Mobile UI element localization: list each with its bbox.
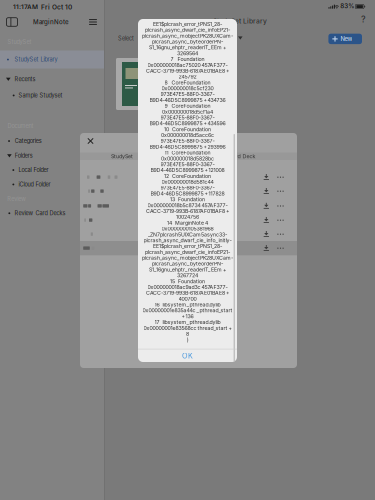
staticText: 8 CoreFoundation [164, 79, 210, 86]
staticText: B9D4-46D5C8999875 + 293996 [149, 144, 225, 150]
staticText: OK [182, 352, 193, 360]
staticText: 973E47E5-88F0-3367- [160, 161, 214, 167]
staticText: plcrash_async_byteorderPN- [152, 261, 223, 267]
staticText: StudySet Library [213, 17, 267, 25]
staticText: MarginNote [33, 18, 69, 26]
staticText: plcrash_async_dwarf_cie_infoEP21- [145, 27, 230, 33]
button[interactable]: Review Card Decks [0, 204, 104, 222]
button[interactable] [80, 184, 297, 198]
staticText: + 136 [181, 313, 193, 319]
staticText: 973E47E5-88F0-3367- [160, 138, 214, 144]
staticText: Local Folder [18, 167, 48, 173]
staticText: Review Card Decks [15, 210, 66, 217]
staticText: 10 CoreFoundation [164, 126, 211, 132]
staticText: 0x000000018d5828bc [161, 155, 214, 162]
staticText: 10024756 [176, 214, 199, 220]
staticText: 11:17AM [13, 3, 38, 11]
button[interactable]: Help [356, 12, 370, 26]
staticText: ? [361, 14, 366, 25]
button[interactable] [80, 170, 297, 184]
staticText: plcrash_async_dwarf_cie_infoEP21- [145, 249, 230, 255]
staticText: 973E47E5-88F0-3367- [160, 91, 214, 97]
staticText: 0x000000018ac75020 457AF377- [147, 62, 227, 68]
staticText: 12 CoreFoundation [164, 173, 211, 179]
staticText: B9D4-46D5C8999875 + 121008 [150, 167, 224, 173]
staticText: StudySet [111, 153, 133, 159]
staticText: S1_16gnu_ehptr_readerIT_EEm + [149, 266, 226, 273]
staticText: plcrash_async_mobjectPK28UXCam- [142, 33, 233, 39]
staticText: CACC-3719-993B-6187AE01BAE8 + [146, 290, 229, 296]
staticText: StudySet [7, 39, 31, 45]
staticText: Fri Oct 10 [41, 3, 72, 11]
staticText: 973E47E5-88F0-3367- [160, 185, 214, 191]
button[interactable]: Local Folder [0, 161, 104, 179]
button[interactable]: Toggle Sidebar [2, 14, 22, 30]
staticText: 0x000000018d581c44 [161, 179, 213, 185]
button[interactable]: StudySet [100, 152, 144, 160]
staticText: plcrash_async_dwarf_cie_info_initIy- [143, 237, 231, 243]
button[interactable]: Recents [0, 70, 104, 88]
staticText: Select [118, 35, 134, 42]
staticText: Categories [15, 138, 42, 144]
staticText: Recents [14, 76, 35, 83]
staticText: 15 Foundation [170, 278, 205, 284]
button[interactable] [80, 199, 297, 213]
staticText: New [340, 35, 352, 42]
staticText: 0x0000000105381968 [161, 225, 213, 232]
button[interactable]: iCloud Folder [0, 175, 104, 193]
button[interactable]: Card Deck [220, 152, 264, 160]
staticText: EE1$plcrash_error_tPNS1_28- [153, 21, 222, 27]
staticText: Review [7, 196, 26, 202]
staticText: 13 Foundation [170, 196, 205, 203]
button[interactable]: OK [138, 349, 237, 362]
staticText: 14 MarginNote 4 [167, 220, 208, 226]
button[interactable]: Sample Studyset [0, 86, 104, 104]
staticText: B9D4-46D5C8999875 + 117828 [150, 190, 224, 197]
staticText: Document [8, 123, 34, 129]
button[interactable]: Categories [0, 132, 104, 150]
staticText: S1_16gnu_ehptr_readerIT_EEm + [149, 44, 226, 51]
button[interactable]: New [328, 34, 362, 44]
button[interactable]: StudySet Library [0, 50, 104, 68]
staticText: 9 CoreFoundation [164, 103, 210, 109]
button[interactable] [80, 241, 297, 255]
staticText: Sample Studyset [18, 92, 62, 99]
staticText: 0x00000001e83568cc thread_start + [143, 325, 231, 331]
staticText: 0x000000018ac9ad3c 457AF377- [147, 284, 227, 290]
staticText: 0x000000018d5cf1a4 [162, 109, 213, 115]
staticText: _ZN7plcrash5UIXCam5async33- [148, 231, 227, 238]
staticText: Card Deck [228, 153, 255, 159]
staticText: Folders [15, 152, 33, 159]
button[interactable]: Select [113, 33, 139, 43]
staticText: 17 libsystem_pthread.dylib [154, 319, 220, 325]
staticText: 245792 [178, 74, 196, 80]
staticText: 3269564 [177, 50, 198, 56]
staticText: 3267724 [177, 272, 198, 278]
staticText: 0x00000001e835a44c _pthread_start [142, 307, 232, 314]
staticText: 0x000000018c5cf230 [161, 85, 213, 91]
button[interactable]: Menu [85, 14, 101, 30]
staticText: B9D4-46D5C8999875 + 434596 [149, 120, 225, 127]
staticText: iCloud Folder [18, 181, 50, 188]
button[interactable]: Folders [0, 147, 104, 165]
staticText: } [186, 336, 188, 343]
staticText: 16 libsystem_pthread.dylib [154, 301, 220, 308]
staticText: 0x000000018d5acc6c [161, 132, 214, 138]
staticText: StudySet Library [14, 56, 57, 63]
staticText: 400700 [178, 296, 196, 302]
button[interactable]: Close [83, 134, 97, 148]
staticText: 0x000000018b5c8734 457AF377- [147, 202, 227, 208]
staticText: CACC-3719-993B-6187AE01BAE8 + [146, 68, 229, 74]
staticText: 11 CoreFoundation [164, 149, 210, 156]
staticText: plcrash_async_byteorderPN- [152, 38, 223, 45]
staticText: CACC-3719-993B-6187AF01BAF8 + [146, 208, 229, 214]
button[interactable] [80, 213, 297, 227]
staticText: plcrash_async_mobjectPK28UXCam- [142, 255, 233, 261]
staticText: 83% [340, 2, 354, 10]
button[interactable] [80, 227, 297, 241]
staticText: EE1$plcrash_error_tPNS1_28- [153, 243, 222, 249]
staticText: 973E47E5-88F0-3367- [160, 114, 214, 121]
staticText: 8 [186, 331, 189, 337]
button[interactable]: Sort [235, 33, 245, 43]
staticText: 7 Foundation [170, 56, 204, 62]
